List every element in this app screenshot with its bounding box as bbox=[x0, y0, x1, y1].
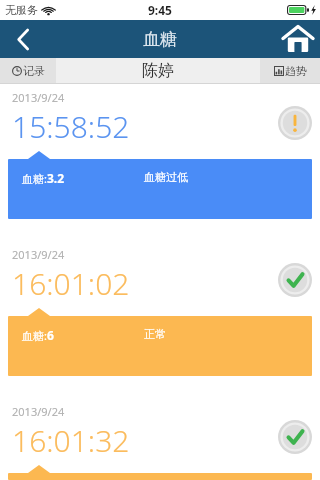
staticText: 9:45 bbox=[148, 2, 172, 18]
staticText: 16:01:32 bbox=[12, 420, 130, 461]
staticText: 2013/9/24 bbox=[12, 404, 65, 419]
button[interactable]: 2013/9/24 bbox=[0, 398, 320, 480]
staticText: 血糖 bbox=[143, 29, 177, 50]
staticText: 2013/9/24 bbox=[12, 90, 65, 105]
staticText: 血糖: bbox=[22, 171, 47, 186]
staticText: 血糖过低 bbox=[144, 170, 188, 184]
staticText: 15:58:52 bbox=[12, 106, 130, 147]
staticText: 记录 bbox=[23, 64, 45, 78]
staticText: 16:01:02 bbox=[12, 263, 130, 304]
staticText: 趋势 bbox=[285, 64, 307, 78]
button[interactable]: 趋势 bbox=[260, 58, 320, 83]
staticText: 3.2 bbox=[47, 170, 65, 186]
staticText: 正常 bbox=[144, 327, 166, 341]
button[interactable]: 2013/9/24 bbox=[0, 241, 320, 376]
staticText: 血糖: bbox=[22, 328, 47, 343]
staticText: 2013/9/24 bbox=[12, 247, 65, 262]
button[interactable]: 记录 bbox=[0, 58, 56, 83]
button[interactable]: 2013/9/24 bbox=[0, 84, 320, 219]
staticText: 陈婷 bbox=[142, 61, 174, 81]
button[interactable]: 返回 bbox=[0, 20, 46, 58]
staticText: 无服务 bbox=[5, 3, 38, 17]
staticText: 6 bbox=[47, 327, 54, 343]
button[interactable]: 主页 bbox=[276, 20, 320, 58]
